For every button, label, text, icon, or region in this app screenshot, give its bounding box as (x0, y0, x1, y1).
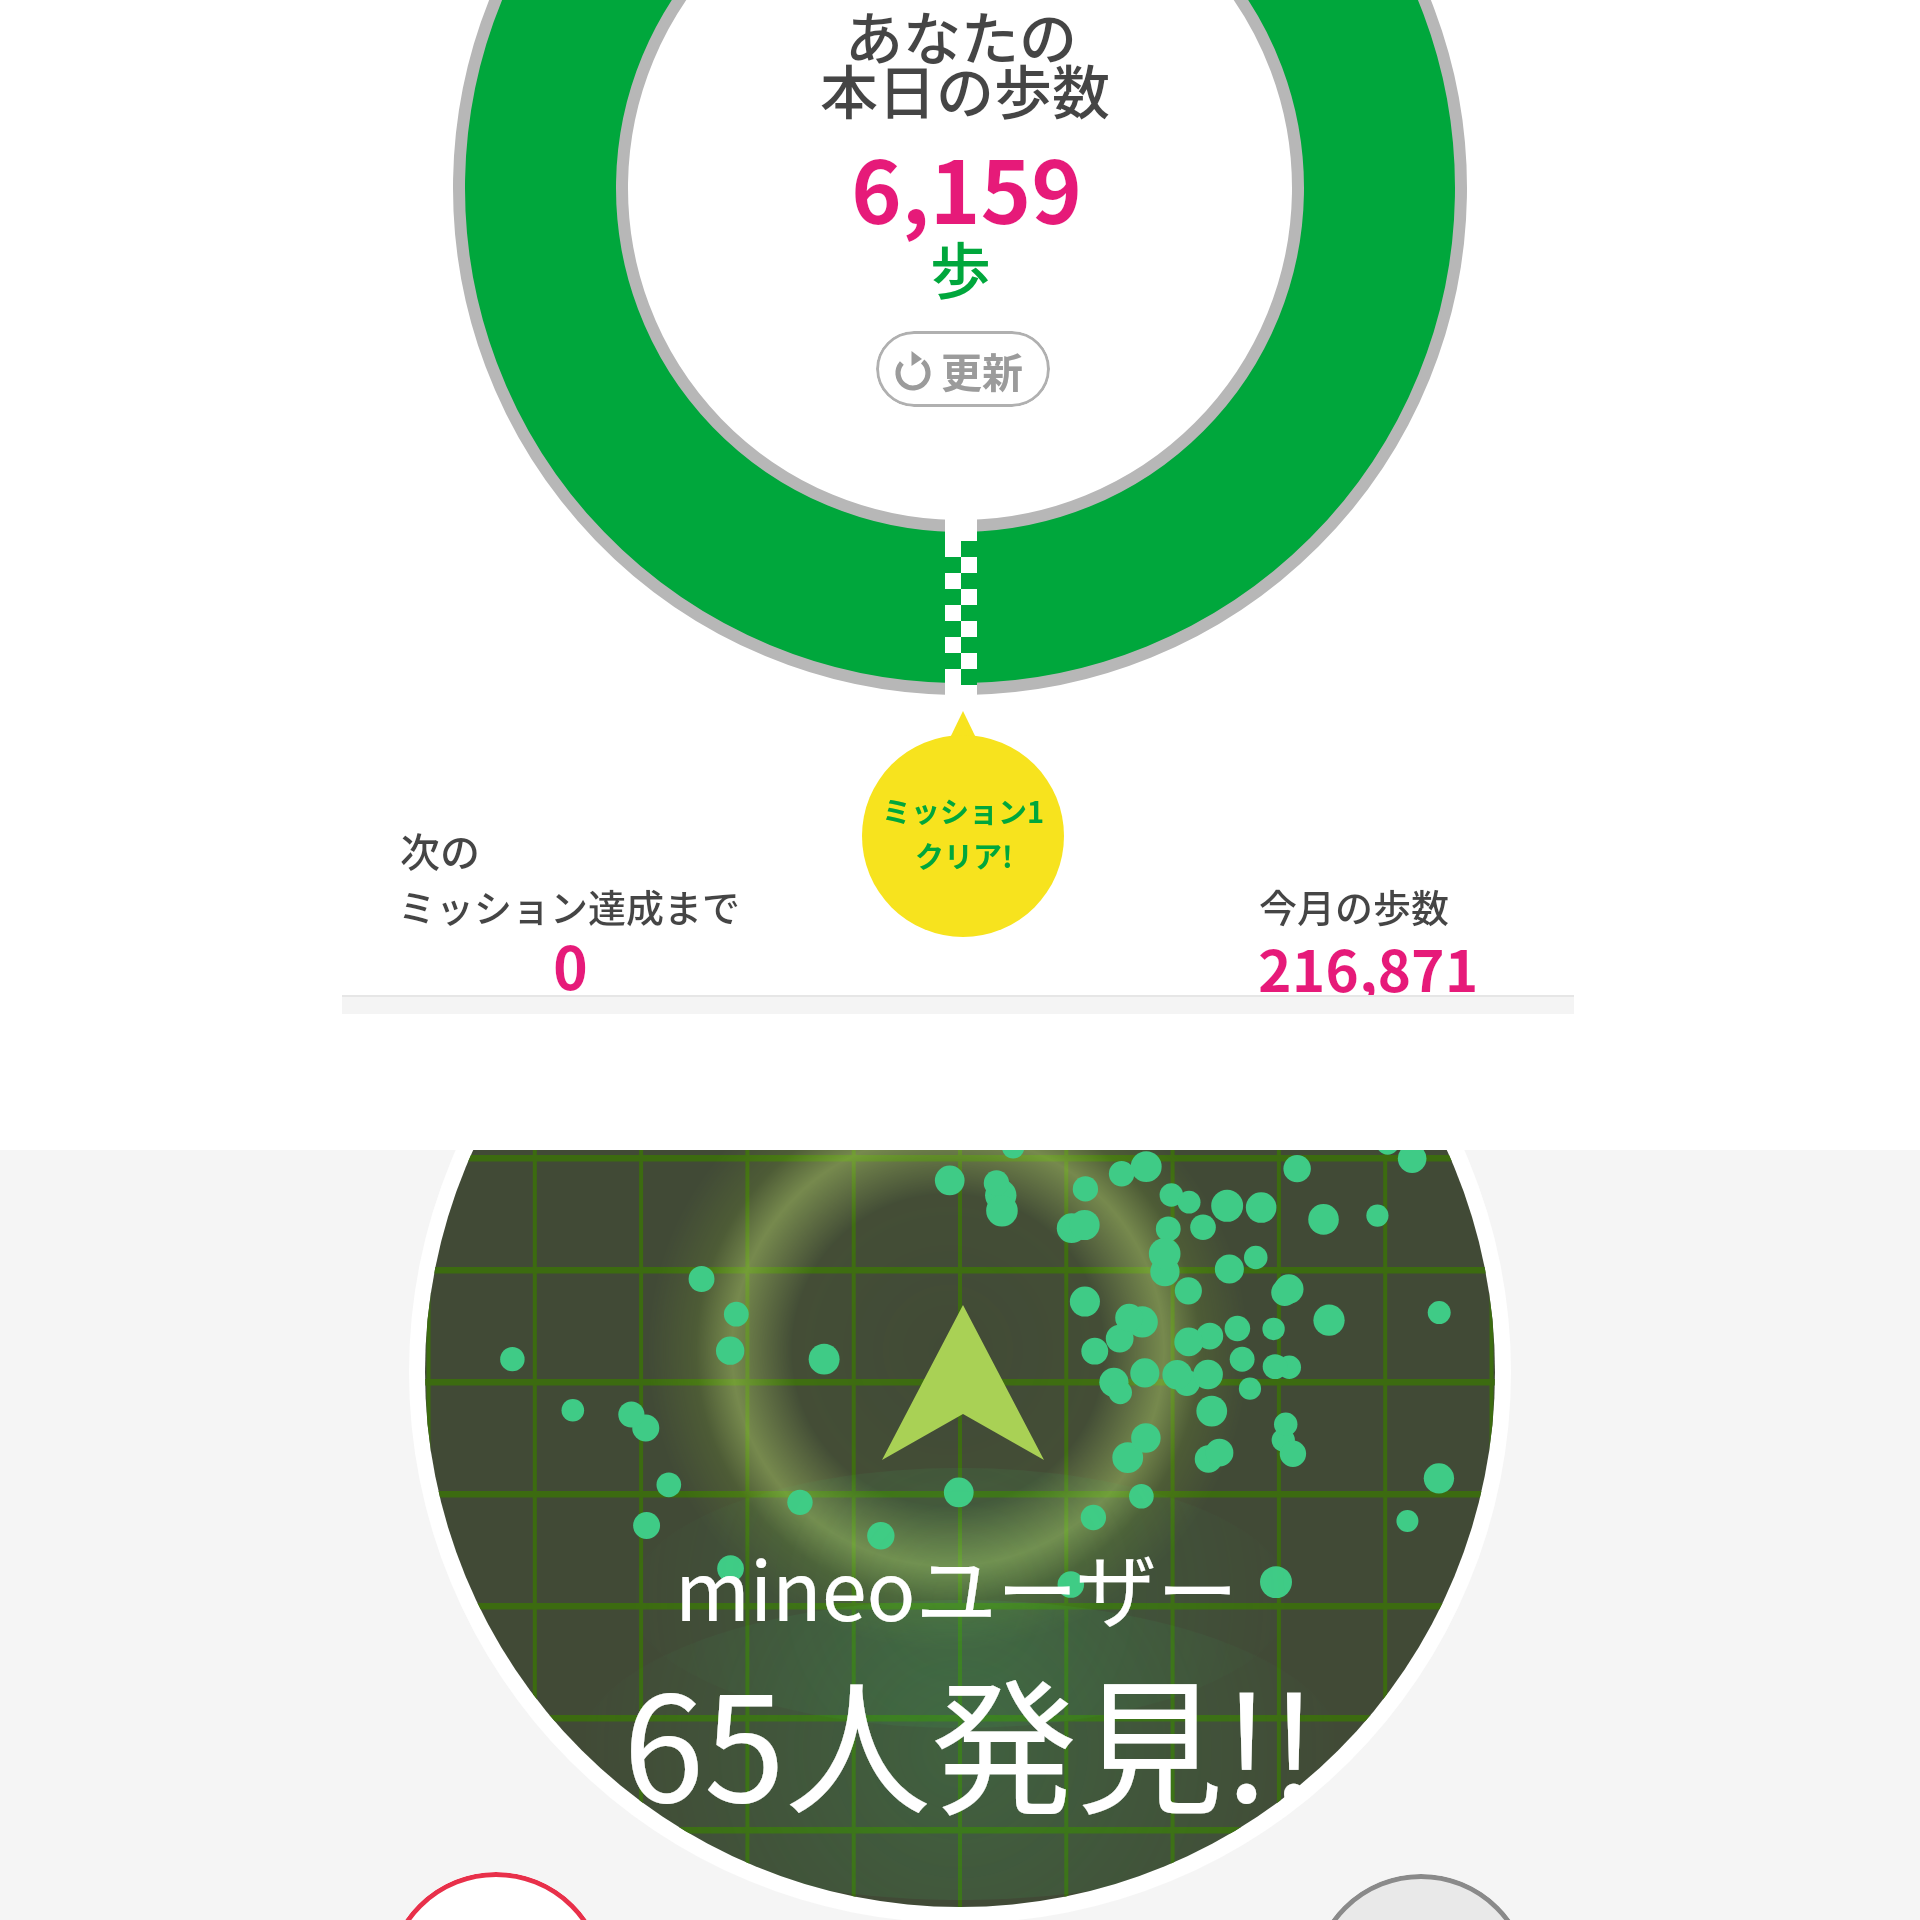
button[interactable]: Refresh (876, 331, 1050, 407)
staticText: 歩 (930, 223, 992, 311)
staticText: ミッション達成まで (398, 878, 741, 933)
button[interactable]: Menu (1311, 1874, 1531, 1920)
other: Refresh (893, 348, 935, 390)
staticText: mineoユーザー (675, 1527, 1239, 1644)
staticText: ミッション1 (882, 789, 1045, 831)
button[interactable]: mineoユーザー (0, 1150, 1920, 1920)
staticText: 65人発見!! (623, 1633, 1318, 1844)
staticText: あなたの (845, 0, 1078, 77)
staticText: 216,871 (1258, 926, 1479, 1009)
staticText: 6,159 (851, 124, 1082, 249)
staticText: 更新 (941, 340, 1023, 399)
staticText: 次の (400, 821, 480, 879)
staticText: 0 (553, 922, 588, 1007)
staticText: クリア! (915, 834, 1013, 876)
staticText: 今月の歩数 (1259, 878, 1450, 933)
button[interactable]: Walk (386, 1872, 606, 1920)
staticText: 本日の歩数 (820, 47, 1111, 131)
